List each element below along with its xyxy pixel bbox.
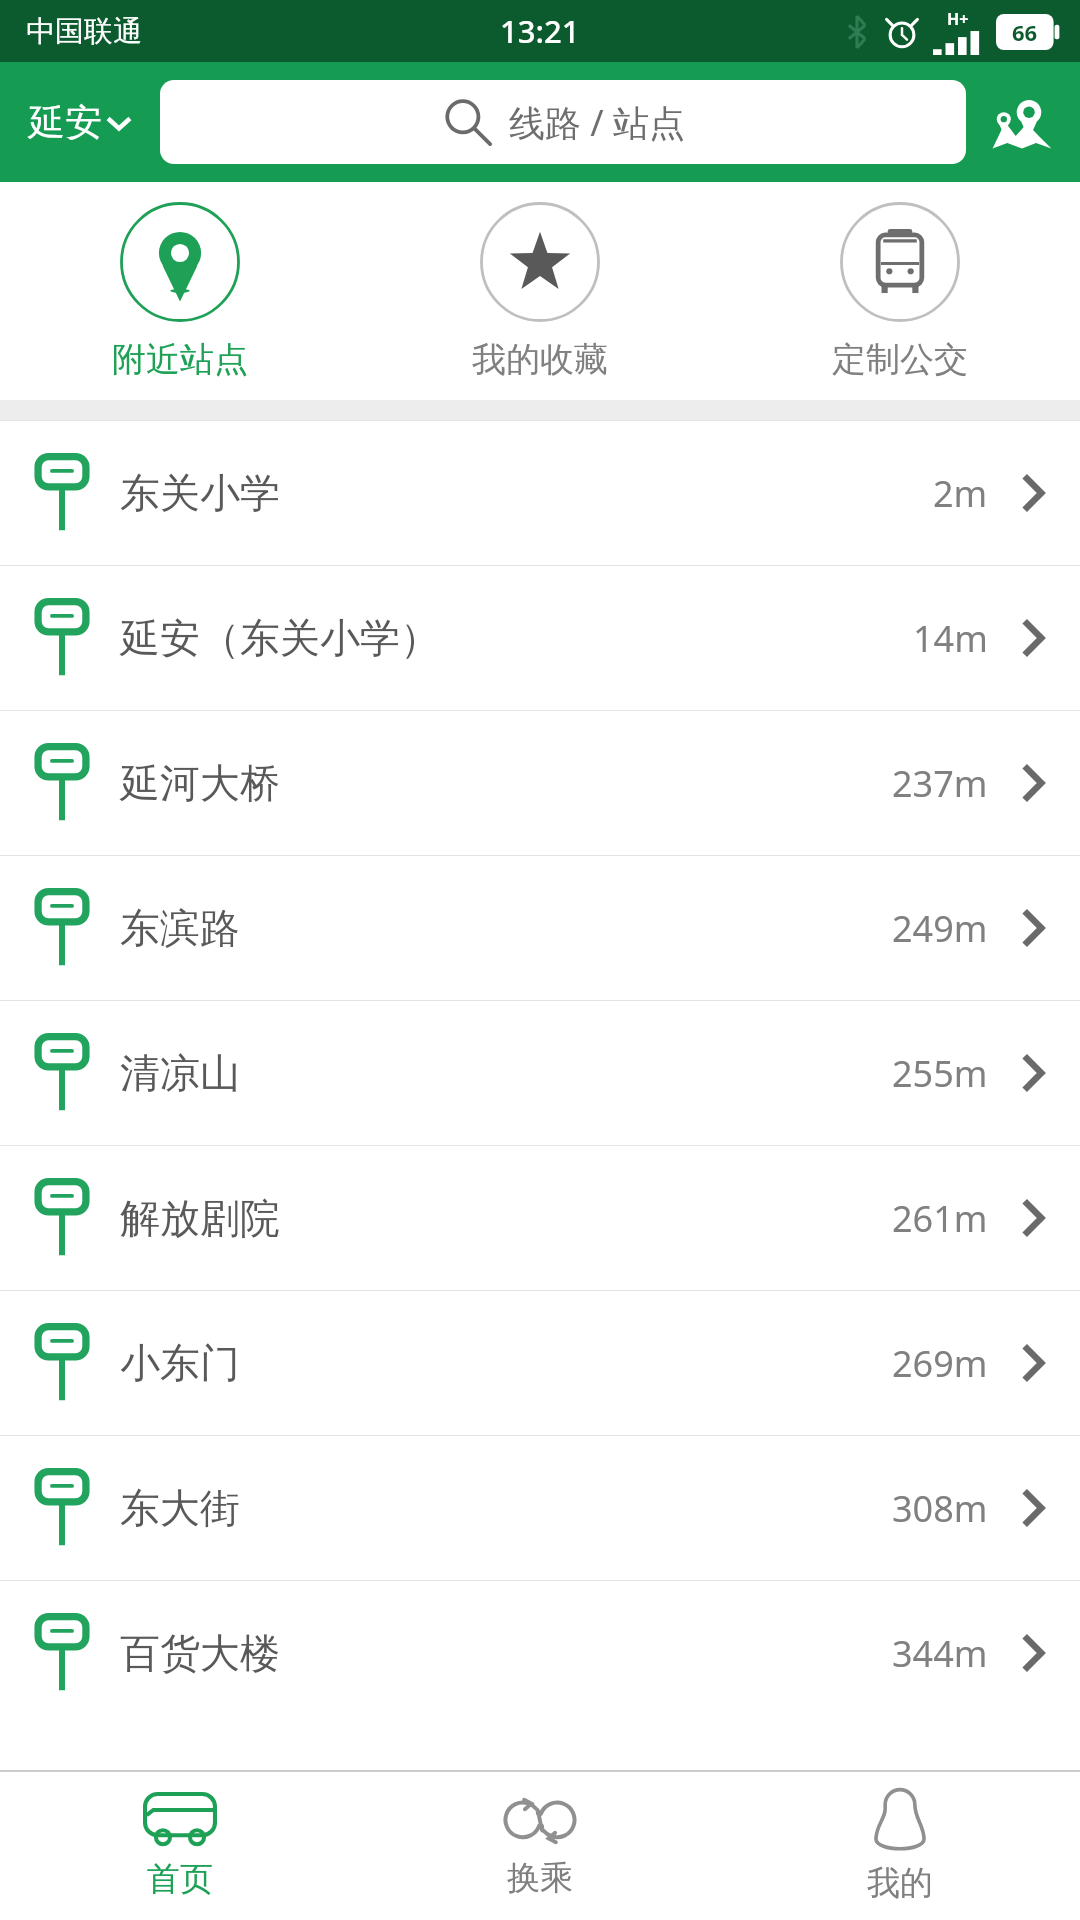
staticText: 东滨路 [120, 903, 240, 953]
button[interactable]: 延河大桥 [0, 711, 1080, 855]
staticText: 东关小学 [120, 468, 280, 518]
button[interactable]: Map [982, 82, 1062, 162]
staticText: 14m [913, 614, 988, 663]
staticText: 解放剧院 [120, 1193, 280, 1243]
staticText: 首页 [147, 1858, 213, 1900]
staticText: 237m [892, 759, 988, 808]
button[interactable]: 清凉山 [0, 1001, 1080, 1145]
button[interactable]: 百货大楼 [0, 1581, 1080, 1725]
button[interactable]: 附近站点 [0, 196, 360, 387]
staticText: 66 [1012, 17, 1038, 47]
button[interactable]: 解放剧院 [0, 1146, 1080, 1290]
staticText: 我的 [867, 1862, 933, 1904]
staticText: 清凉山 [120, 1048, 240, 1098]
staticText: 269m [892, 1339, 988, 1388]
staticText: 换乘 [507, 1857, 573, 1899]
staticText: 东大街 [120, 1483, 240, 1533]
button[interactable]: 延安 [18, 89, 142, 156]
staticText: 2m [933, 469, 988, 518]
staticText: 线路 / 站点 [509, 98, 686, 147]
staticText: 延安（东关小学） [120, 613, 440, 663]
button[interactable]: 东关小学 [0, 421, 1080, 565]
staticText: 249m [892, 904, 988, 953]
button[interactable]: 首页 [0, 1772, 360, 1920]
button[interactable]: 定制公交 [720, 196, 1080, 387]
staticText: 延安 [28, 99, 102, 146]
staticText: 261m [892, 1194, 988, 1243]
button[interactable]: 东滨路 [0, 856, 1080, 1000]
button[interactable]: 线路 / 站点 [160, 80, 966, 164]
staticText: 308m [892, 1484, 988, 1533]
staticText: 定制公交 [832, 338, 968, 381]
staticText: 延河大桥 [120, 758, 280, 808]
staticText: 百货大楼 [120, 1628, 280, 1678]
staticText: 255m [892, 1049, 988, 1098]
button[interactable]: 换乘 [360, 1772, 720, 1920]
staticText: 我的收藏 [472, 338, 608, 381]
staticText: 中国联通 [26, 13, 142, 50]
staticText: H+ [947, 8, 969, 30]
button[interactable]: 我的 [720, 1772, 1080, 1920]
button[interactable]: 东大街 [0, 1436, 1080, 1580]
button[interactable]: 小东门 [0, 1291, 1080, 1435]
staticText: 小东门 [120, 1338, 240, 1388]
staticText: 附近站点 [112, 338, 248, 381]
button[interactable]: 延安（东关小学） [0, 566, 1080, 710]
staticText: 344m [892, 1629, 988, 1678]
button[interactable]: 我的收藏 [360, 196, 720, 387]
staticText: 13:21 [500, 10, 580, 52]
